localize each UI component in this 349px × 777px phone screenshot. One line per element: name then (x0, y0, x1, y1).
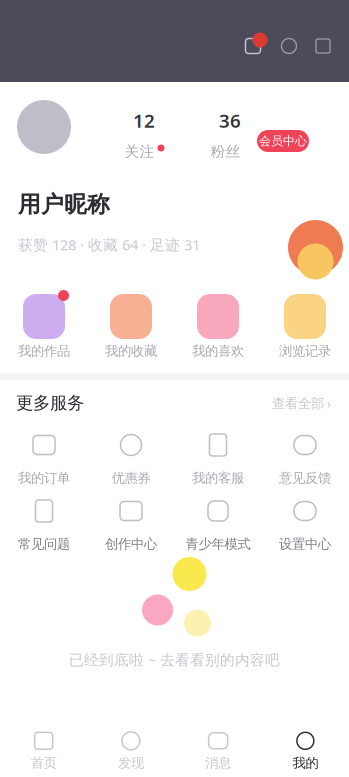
button[interactable]: 创作中心 (87, 499, 174, 551)
staticText: 浏览记录 (279, 343, 331, 359)
staticText: 创作中心 (105, 536, 157, 552)
button[interactable]: 我的作品 (0, 294, 87, 358)
staticText: 我的 (292, 755, 318, 771)
button[interactable]: 我的收藏 (87, 294, 174, 358)
button[interactable]: 优惠券 (87, 433, 174, 485)
button[interactable]: 36 (187, 112, 273, 159)
staticText: 用户昵称 (18, 191, 110, 218)
button[interactable]: 我的订单 (0, 433, 87, 485)
staticText: 更多服务 (16, 392, 84, 414)
button[interactable]: 浏览记录 (261, 294, 348, 358)
staticText: 12 (133, 108, 155, 133)
button[interactable]: 查看全部 › (272, 394, 331, 412)
staticText: 查看全部 › (272, 394, 331, 412)
staticText: 优惠券 (111, 470, 150, 486)
staticText: 发现 (118, 755, 144, 771)
staticText: 我的收藏 (105, 343, 157, 359)
button[interactable]: 12 (101, 112, 187, 159)
button[interactable]: 我的喜欢 (174, 294, 261, 358)
staticText: 粉丝 (210, 142, 240, 160)
staticText: 会员中心 (259, 134, 307, 148)
button[interactable]: 消息 (174, 725, 262, 777)
staticText: 已经到底啦 ~ 去看看别的内容吧 (69, 650, 280, 669)
button[interactable]: 会员中心 (257, 130, 309, 152)
button[interactable]: 首页 (0, 725, 87, 777)
button[interactable]: 青少年模式 (174, 499, 261, 551)
button[interactable]: Notifications (241, 36, 265, 56)
staticText: 获赞 128 · 收藏 64 · 足迹 31 (18, 235, 200, 254)
staticText: 关注 (124, 142, 154, 160)
staticText: 意见反馈 (279, 470, 331, 486)
staticText: 常见问题 (18, 536, 70, 552)
button[interactable]: Profile photo (17, 100, 71, 154)
button[interactable]: Scan (279, 36, 299, 56)
staticText: 36 (219, 108, 241, 133)
button[interactable]: Settings (313, 36, 333, 56)
button[interactable]: 我的客服 (174, 433, 261, 485)
button[interactable]: 我的 (262, 725, 349, 777)
staticText: 消息 (205, 755, 231, 771)
staticText: 我的客服 (192, 470, 244, 486)
button[interactable]: 设置中心 (261, 499, 348, 551)
staticText: 首页 (31, 755, 57, 771)
staticText: 我的订单 (18, 470, 70, 486)
button[interactable]: 发现 (87, 725, 174, 777)
button[interactable]: Rewards (288, 220, 343, 275)
staticText: 我的喜欢 (192, 343, 244, 359)
button[interactable]: 意见反馈 (261, 433, 348, 485)
staticText: 青少年模式 (185, 536, 250, 552)
button[interactable]: 常见问题 (0, 499, 87, 551)
staticText: 我的作品 (18, 343, 70, 359)
staticText: 设置中心 (279, 536, 331, 552)
